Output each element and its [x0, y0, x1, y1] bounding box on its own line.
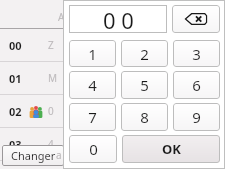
- staticText: 02: [9, 104, 22, 119]
- button[interactable]: 00: [0, 29, 225, 62]
- staticText: 0 0: [103, 5, 134, 33]
- button[interactable]: 7: [69, 103, 116, 131]
- staticText: 9: [192, 107, 201, 127]
- staticText: a: [56, 148, 62, 162]
- staticText: 0: [48, 104, 54, 118]
- staticText: 7: [88, 107, 97, 127]
- staticText: 0: [89, 139, 98, 159]
- button[interactable]: 1: [69, 40, 116, 67]
- button[interactable]: OK: [122, 135, 220, 163]
- staticText: 01: [9, 71, 22, 86]
- button[interactable]: 9: [173, 103, 220, 131]
- staticText: Z: [48, 38, 54, 52]
- button[interactable]: 5: [121, 71, 168, 99]
- staticText: 5: [140, 75, 149, 95]
- staticText: 03: [9, 137, 22, 152]
- staticText: OK: [162, 140, 181, 158]
- button[interactable]: 3: [173, 40, 220, 67]
- staticText: 2: [140, 44, 149, 64]
- button[interactable]: 03: [0, 128, 225, 161]
- staticText: 6: [192, 75, 201, 95]
- staticText: Changer: [11, 148, 56, 163]
- button[interactable]: 02: [0, 95, 225, 128]
- button[interactable]: 6: [173, 71, 220, 99]
- button[interactable]: 01: [0, 62, 225, 95]
- button[interactable]: 4: [69, 71, 116, 99]
- button[interactable]: 2: [121, 40, 168, 67]
- staticText: 4: [48, 137, 54, 151]
- button[interactable]: 8: [121, 103, 168, 131]
- staticText: 1: [88, 44, 97, 64]
- staticText: 4: [88, 75, 97, 95]
- staticText: 8: [140, 107, 149, 127]
- staticText: 00: [9, 38, 22, 53]
- staticText: 3: [192, 44, 201, 64]
- button[interactable]: Changer: [2, 145, 64, 166]
- staticText: A: [58, 10, 65, 24]
- button[interactable]: 0: [69, 135, 117, 163]
- button[interactable]: Backspace: [172, 5, 220, 33]
- staticText: M: [48, 71, 58, 85]
